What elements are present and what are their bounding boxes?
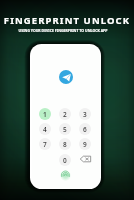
staticText: 3 <box>83 110 87 119</box>
staticText: 7 <box>43 140 47 149</box>
button[interactable]: 8 <box>59 138 71 150</box>
button[interactable]: 1 <box>39 108 51 120</box>
button[interactable]: 5 <box>59 123 71 135</box>
button[interactable]: 9 <box>79 138 91 150</box>
button[interactable]: 3 <box>79 108 91 120</box>
button[interactable]: 0 <box>59 154 71 166</box>
staticText: 5 <box>63 125 67 134</box>
button[interactable]: Fingerprint <box>61 171 70 180</box>
staticText: FINGERPRINT UNLOCK <box>0 14 134 27</box>
button[interactable]: 6 <box>79 123 91 135</box>
staticText: 1 <box>43 110 47 119</box>
button[interactable]: 7 <box>39 138 51 150</box>
staticText: USING YOUR DEVICE FINGERPRINT TO UNLOCK … <box>0 28 130 33</box>
staticText: 0 <box>63 156 67 165</box>
staticText: 4 <box>43 125 47 134</box>
staticText: 6 <box>83 125 87 134</box>
staticText: 8 <box>63 140 67 149</box>
button[interactable]: 4 <box>39 123 51 135</box>
button[interactable]: 2 <box>59 108 71 120</box>
staticText: 2 <box>63 110 67 119</box>
staticText: 9 <box>83 140 87 149</box>
button[interactable]: Delete <box>79 154 92 164</box>
